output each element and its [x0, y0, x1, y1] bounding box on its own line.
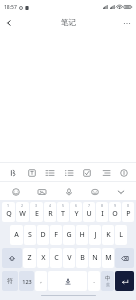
staticText: 英	[106, 282, 110, 287]
button[interactable]: B	[76, 248, 88, 268]
button[interactable]: 符	[2, 271, 18, 291]
staticText: V	[67, 253, 72, 263]
button[interactable]: Switch language	[101, 271, 114, 291]
button[interactable]: G	[63, 225, 75, 245]
button[interactable]: D	[37, 225, 49, 245]
staticText: .	[93, 277, 95, 285]
button[interactable]: M	[102, 248, 114, 268]
staticText: B	[80, 253, 85, 263]
staticText: E	[35, 209, 39, 219]
button[interactable]: 0	[122, 202, 134, 222]
staticText: O	[112, 209, 118, 219]
button[interactable]: 8	[96, 202, 108, 222]
button[interactable]: Back	[2, 16, 16, 30]
button[interactable]: Info	[116, 165, 131, 180]
button[interactable]: Checklist	[79, 165, 94, 180]
button[interactable]: 9	[109, 202, 121, 222]
button[interactable]: Emoji	[8, 184, 23, 199]
button[interactable]: N	[89, 248, 101, 268]
button[interactable]: 1	[2, 202, 15, 222]
staticText: 6	[75, 203, 78, 208]
staticText: T	[61, 209, 65, 219]
button[interactable]: J	[89, 225, 101, 245]
staticText: 中	[105, 275, 111, 282]
staticText: 123	[22, 278, 32, 285]
button[interactable]: Z	[23, 248, 36, 268]
staticText: X	[41, 253, 46, 263]
button[interactable]: S	[24, 225, 36, 245]
staticText: 笔记	[61, 18, 76, 27]
button[interactable]: Stickers	[87, 184, 102, 199]
button[interactable]: Indent	[98, 165, 113, 180]
button[interactable]: Space	[48, 271, 87, 291]
button[interactable]: V	[63, 248, 75, 268]
button[interactable]: 6	[70, 202, 82, 222]
button[interactable]: ,	[35, 271, 47, 291]
staticText: H	[79, 230, 85, 240]
staticText: Z	[27, 253, 32, 263]
button[interactable]: Numbered list	[42, 165, 57, 180]
staticText: P	[126, 209, 131, 219]
button[interactable]: Image	[34, 184, 49, 199]
button[interactable]: 5	[57, 202, 69, 222]
staticText: 2	[21, 203, 24, 208]
button[interactable]: .	[88, 271, 100, 291]
staticText: D	[40, 230, 46, 240]
button[interactable]: Voice input	[61, 184, 76, 199]
button[interactable]: 2	[16, 202, 29, 222]
staticText: 符	[7, 277, 13, 285]
button[interactable]: Backspace	[115, 248, 134, 268]
staticText: L	[119, 230, 123, 240]
staticText: 4	[49, 203, 52, 208]
staticText: 9	[114, 203, 117, 208]
staticText: S	[28, 230, 32, 240]
staticText: I	[101, 209, 104, 219]
button[interactable]: L	[115, 225, 127, 245]
button[interactable]: C	[50, 248, 62, 268]
staticText: 8	[101, 203, 104, 208]
staticText: U	[86, 209, 92, 219]
staticText: K	[106, 230, 111, 240]
staticText: 5	[62, 203, 65, 208]
button[interactable]: K	[102, 225, 114, 245]
button[interactable]: Collapse keyboard	[113, 184, 128, 199]
staticText: W	[19, 209, 26, 219]
staticText: 1	[7, 203, 10, 208]
staticText: M	[105, 253, 112, 263]
staticText: C	[54, 253, 59, 263]
button[interactable]: H	[76, 225, 88, 245]
button[interactable]: Enter	[115, 271, 134, 291]
button[interactable]: 4	[44, 202, 56, 222]
staticText: R	[48, 209, 53, 219]
staticText: 18:57	[4, 4, 17, 11]
button[interactable]: 123	[19, 271, 34, 291]
staticText: 7	[88, 203, 91, 208]
button[interactable]: X	[37, 248, 49, 268]
button[interactable]: Bold	[5, 165, 20, 180]
staticText: J	[94, 230, 97, 240]
button[interactable]: 3	[30, 202, 43, 222]
staticText: 3	[35, 203, 38, 208]
staticText: A	[14, 230, 19, 240]
staticText: N	[92, 253, 98, 263]
staticText: F	[54, 230, 58, 240]
button[interactable]: 7	[83, 202, 95, 222]
button[interactable]: Text style	[24, 165, 39, 180]
button[interactable]: More options	[120, 16, 134, 30]
staticText: G	[66, 230, 72, 240]
staticText: Y	[74, 209, 79, 219]
staticText: Q	[6, 209, 12, 219]
button[interactable]: Bullet list	[61, 165, 76, 180]
button[interactable]: A	[10, 225, 23, 245]
staticText: 0	[127, 203, 130, 208]
button[interactable]: F	[50, 225, 62, 245]
button[interactable]: Shift	[2, 248, 22, 268]
staticText: ,	[40, 277, 42, 285]
